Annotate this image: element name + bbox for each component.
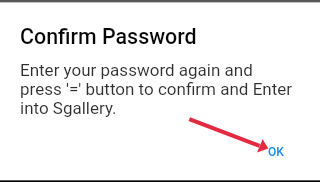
- staticText: Confirm Password: [20, 24, 197, 49]
- button[interactable]: OK: [252, 137, 300, 167]
- staticText: Enter your password again and press '=' …: [20, 60, 293, 118]
- staticText: OK: [268, 145, 284, 159]
